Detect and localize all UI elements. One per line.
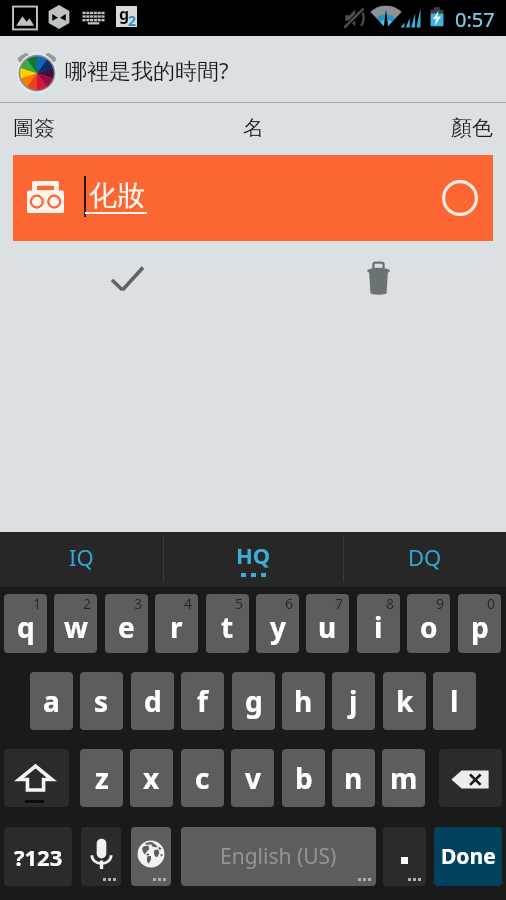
staticText: w [64,608,88,646]
button[interactable]: IQ [0,532,163,587]
staticText: q [17,608,35,646]
staticText: DQ [408,542,442,572]
button[interactable]: x [130,749,173,807]
staticText: g [245,682,263,720]
staticText: 圖簽 [13,115,55,141]
staticText: 4 [184,594,193,613]
button[interactable]: English (US) [181,827,376,886]
staticText: 2 [128,11,137,30]
button[interactable]: Voice input [81,827,121,886]
button[interactable]: q [4,594,47,653]
button[interactable]: c [181,749,224,807]
staticText: y [270,608,286,646]
staticText: t [221,608,234,646]
staticText: h [294,682,313,720]
staticText: ?123 [14,842,63,872]
button[interactable]: DQ [344,532,506,587]
button[interactable]: h [282,672,325,730]
staticText: English (US) [220,842,337,871]
button[interactable] [383,827,426,886]
button[interactable]: Shift [4,749,69,807]
button[interactable]: w [54,594,97,653]
button[interactable]: e [105,594,148,653]
button[interactable]: Delete [355,254,391,298]
button[interactable]: z [80,749,123,807]
staticText: f [197,682,208,720]
button[interactable]: p [458,594,501,653]
staticText: 名 [243,115,264,141]
staticText: 化妝 [89,178,145,213]
button[interactable]: 哪裡是我的時間? [0,36,506,103]
staticText: i [374,608,383,646]
button[interactable]: k [383,672,426,730]
button[interactable]: u [306,594,349,653]
staticText: o [420,608,438,646]
button[interactable]: i [357,594,400,653]
staticText: m [390,759,418,797]
button[interactable]: g [232,672,275,730]
staticText: 顏色 [451,115,493,141]
staticText: r [170,608,183,646]
staticText: j [349,682,358,720]
button[interactable]: Confirm [100,254,148,302]
button[interactable]: o [407,594,450,653]
button[interactable]: y [256,594,299,653]
staticText: d [144,682,162,720]
staticText: s [94,682,109,720]
staticText: p [471,608,489,646]
staticText: v [245,759,261,797]
staticText: k [396,682,414,720]
staticText: x [143,759,160,797]
staticText: l [450,682,459,720]
staticText: g [119,3,130,24]
staticText: HQ [236,540,271,570]
button[interactable]: ?123 [4,827,72,886]
button[interactable]: r [155,594,198,653]
staticText: b [295,759,313,797]
staticText: a [43,682,60,720]
staticText: 0:57 [455,6,495,33]
button[interactable]: m [382,749,425,807]
staticText: 9 [436,594,445,613]
staticText: 0 [487,594,496,613]
staticText: 6 [285,594,294,613]
staticText: 1 [33,594,42,613]
button[interactable]: v [231,749,274,807]
button[interactable]: HQ [164,532,343,587]
button[interactable]: t [206,594,249,653]
button[interactable]: s [80,672,123,730]
button[interactable]: d [131,672,174,730]
button[interactable]: 化妝 [13,155,493,241]
staticText: z [95,759,109,797]
staticText: 8 [386,594,395,613]
staticText: 3 [134,594,143,613]
staticText: n [344,759,363,797]
staticText: 2 [83,594,92,613]
button[interactable]: b [282,749,325,807]
button[interactable]: Backspace [439,749,502,807]
button[interactable]: a [30,672,73,730]
button[interactable]: Change language [131,827,171,886]
button[interactable]: n [332,749,375,807]
staticText: Done [441,842,496,871]
button[interactable]: Done [434,827,502,886]
button[interactable]: l [433,672,476,730]
staticText: 哪裡是我的時間? [65,55,229,85]
staticText: e [118,608,135,646]
staticText: c [195,759,210,797]
button[interactable]: f [181,672,224,730]
staticText: 7 [335,594,344,613]
staticText: u [318,608,337,646]
staticText: 5 [235,594,244,613]
button[interactable]: j [332,672,375,730]
staticText: IQ [69,542,94,572]
